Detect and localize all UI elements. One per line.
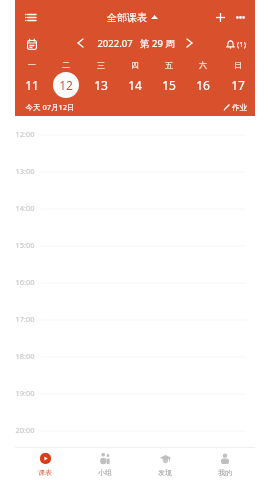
staticText: 13 <box>94 77 108 93</box>
staticText: 我的 <box>218 468 232 477</box>
button[interactable]: 一 <box>15 58 49 100</box>
button[interactable]: 作业 <box>223 103 247 112</box>
staticText: 13:00 <box>15 166 35 176</box>
button[interactable]: Menu <box>20 7 41 27</box>
staticText: 15 <box>162 77 176 93</box>
staticText: 发现 <box>158 468 172 477</box>
button[interactable]: 全部课表 <box>107 9 158 25</box>
staticText: 11 <box>25 77 39 93</box>
staticText: 16:00 <box>15 277 35 287</box>
staticText: 2022.07 <box>97 37 133 50</box>
button[interactable]: 日 <box>221 58 255 100</box>
button[interactable]: More options <box>231 8 249 26</box>
staticText: 作业 <box>232 103 247 112</box>
staticText: 五 <box>165 60 173 70</box>
staticText: 日 <box>234 60 242 70</box>
button[interactable]: Previous week <box>72 34 89 51</box>
staticText: 16 <box>196 77 210 93</box>
button[interactable]: 我的 <box>195 447 255 480</box>
staticText: 第 29 周 <box>140 37 175 50</box>
staticText: 四 <box>131 60 139 70</box>
staticText: 19:00 <box>15 388 35 398</box>
staticText: 12 <box>59 77 73 93</box>
button[interactable]: 六 <box>186 58 220 100</box>
staticText: 六 <box>199 60 207 70</box>
staticText: 17:00 <box>15 314 35 324</box>
staticText: 17 <box>231 77 245 93</box>
staticText: 18:00 <box>15 351 35 361</box>
button[interactable]: Next week <box>181 34 198 51</box>
staticText: 12:00 <box>15 129 35 139</box>
staticText: 全部课表 <box>107 11 147 24</box>
staticText: 二 <box>62 60 70 70</box>
button[interactable]: 四 <box>118 58 152 100</box>
button[interactable]: 二 <box>49 58 83 100</box>
button[interactable]: 课表 <box>15 447 75 480</box>
button[interactable]: 小组 <box>75 447 135 480</box>
staticText: 一 <box>28 60 36 70</box>
staticText: (1) <box>237 39 246 49</box>
button[interactable]: 发现 <box>135 447 195 480</box>
staticText: 14 <box>128 77 142 93</box>
staticText: 三 <box>97 60 105 70</box>
button[interactable]: Add <box>211 8 229 26</box>
staticText: 小组 <box>98 468 112 477</box>
staticText: 14:00 <box>15 203 35 213</box>
staticText: 20:00 <box>15 425 35 435</box>
button[interactable]: Calendar <box>21 34 42 55</box>
button[interactable]: (1) <box>226 34 246 54</box>
staticText: 15:00 <box>15 240 35 250</box>
button[interactable]: 三 <box>84 58 118 100</box>
staticText: 今天 07月12日 <box>25 102 75 112</box>
staticText: 课表 <box>38 468 52 477</box>
button[interactable]: 五 <box>152 58 186 100</box>
